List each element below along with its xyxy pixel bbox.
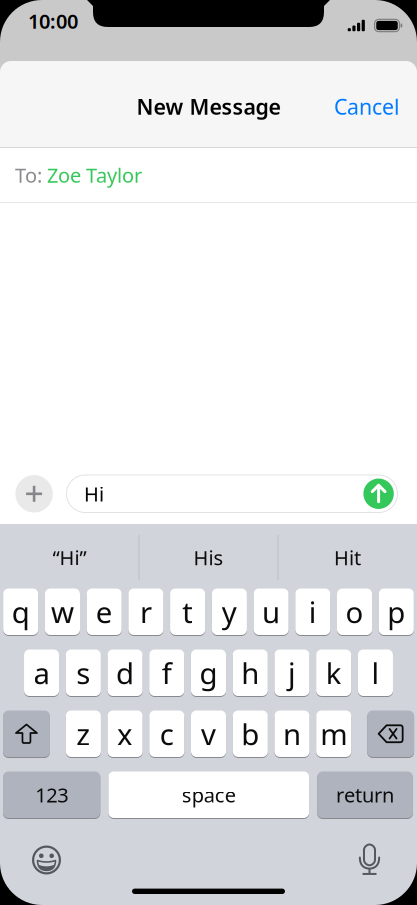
staticText: New Message [136, 92, 280, 121]
button[interactable]: v [191, 710, 226, 757]
button[interactable]: a [24, 649, 59, 696]
button[interactable]: Shift [3, 710, 50, 757]
staticText: His [193, 544, 223, 571]
button[interactable]: Send [363, 479, 394, 509]
staticText: Hi [84, 480, 104, 507]
staticText: y [222, 592, 237, 631]
staticText: f [162, 653, 172, 692]
button[interactable]: y [212, 588, 247, 635]
button[interactable]: g [191, 649, 226, 696]
staticText: e [96, 592, 113, 631]
button[interactable]: To: [0, 148, 417, 202]
button[interactable]: t [170, 588, 205, 635]
button[interactable]: “Hi” [0, 528, 139, 586]
staticText: t [182, 592, 193, 631]
button[interactable]: His [139, 528, 278, 586]
staticText: c [160, 714, 174, 753]
button[interactable]: f [149, 649, 184, 696]
staticText: 10:00 [28, 8, 78, 34]
button[interactable]: z [66, 710, 101, 757]
button[interactable]: r [128, 588, 163, 635]
button[interactable]: n [274, 710, 310, 757]
button[interactable]: Add attachment [15, 475, 53, 512]
staticText: Hit [334, 544, 361, 571]
button[interactable]: Delete [367, 710, 414, 757]
button[interactable]: q [3, 588, 38, 635]
staticText: u [262, 592, 280, 631]
button[interactable]: s [66, 649, 101, 696]
staticText: p [387, 592, 405, 631]
button[interactable]: i [295, 588, 330, 635]
staticText: “Hi” [52, 544, 86, 571]
staticText: v [201, 714, 216, 753]
staticText: l [371, 653, 379, 692]
button[interactable]: j [274, 649, 309, 696]
staticText: m [320, 714, 347, 753]
button[interactable]: l [358, 649, 393, 696]
button[interactable]: Emoji [32, 845, 61, 874]
staticText: r [140, 592, 152, 631]
staticText: Cancel [334, 92, 400, 121]
button[interactable]: x [107, 710, 143, 757]
button[interactable]: b [233, 710, 268, 757]
staticText: g [199, 653, 217, 692]
staticText: w [51, 592, 74, 631]
staticText: x [117, 714, 133, 753]
button[interactable]: k [316, 649, 351, 696]
button[interactable]: w [45, 588, 80, 635]
staticText: space [182, 781, 236, 808]
staticText: s [76, 653, 90, 692]
staticText: z [76, 714, 90, 753]
button[interactable]: Hit [278, 528, 417, 586]
button[interactable]: Cancel [334, 92, 400, 121]
button[interactable]: p [379, 588, 414, 635]
button[interactable]: d [107, 649, 143, 696]
staticText: To: [15, 162, 42, 188]
staticText: o [346, 592, 364, 631]
button[interactable]: Dictate [358, 844, 381, 875]
button[interactable]: e [87, 588, 122, 635]
button[interactable]: u [253, 588, 289, 635]
staticText: d [116, 653, 134, 692]
staticText: a [34, 653, 50, 692]
staticText: q [12, 592, 30, 631]
staticText: n [283, 714, 301, 753]
button[interactable]: m [316, 710, 351, 757]
staticText: return [336, 781, 394, 808]
staticText: 123 [35, 781, 68, 808]
staticText: i [309, 592, 317, 631]
button[interactable]: return [317, 771, 413, 818]
staticText: b [241, 714, 259, 753]
button[interactable]: o [337, 588, 372, 635]
staticText: k [326, 653, 342, 692]
button[interactable]: 123 [3, 771, 100, 818]
button[interactable]: h [233, 649, 268, 696]
staticText: h [241, 653, 259, 692]
staticText: j [288, 653, 296, 692]
staticText: Zoe Taylor [47, 162, 142, 188]
button[interactable]: c [149, 710, 184, 757]
button[interactable]: space [108, 771, 309, 818]
